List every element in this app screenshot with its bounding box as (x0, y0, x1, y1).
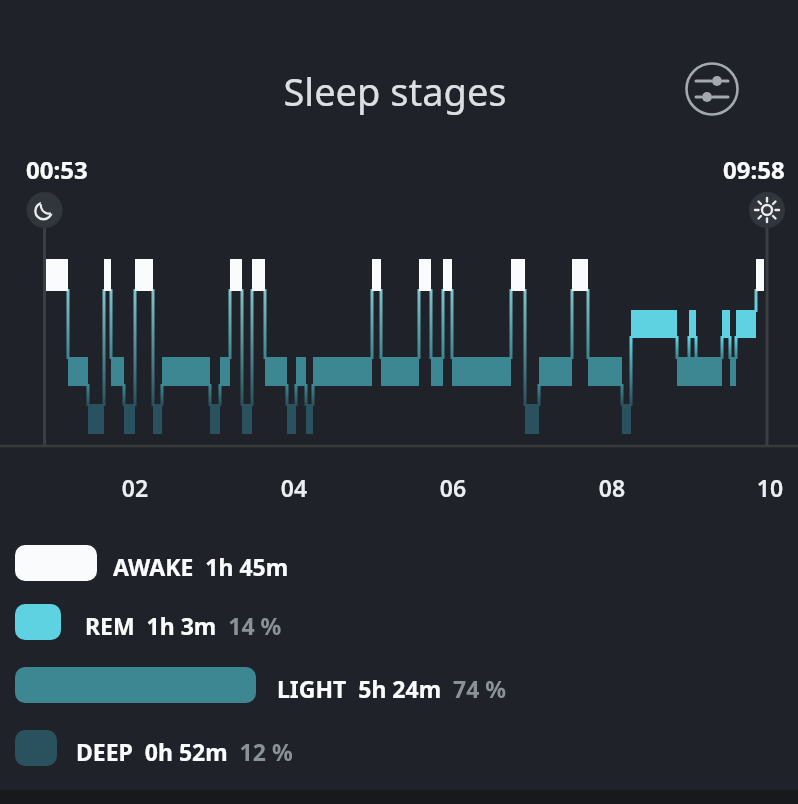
staticText: 08 (582, 472, 642, 502)
staticText: 00:53 (26, 153, 88, 186)
staticText: 02 (105, 472, 165, 502)
staticText: 04 (264, 472, 324, 502)
staticText: 06 (423, 472, 483, 502)
staticText: LIGHT 5h 24m 74 % (277, 673, 507, 704)
staticText: DEEP 0h 52m 12 % (76, 736, 293, 767)
staticText: 09:58 (723, 153, 785, 186)
button[interactable] (684, 61, 740, 117)
staticText: AWAKE 1h 45m (113, 551, 289, 582)
staticText: 10 (740, 472, 798, 502)
staticText: Sleep stages (0, 65, 794, 117)
staticText: REM 1h 3m 14 % (85, 610, 282, 641)
